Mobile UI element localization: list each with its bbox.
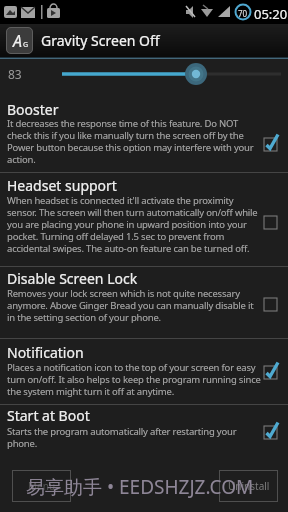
button[interactable] [0, 59, 288, 89]
button[interactable]: Notification [0, 338, 288, 404]
staticText: Headset support [7, 176, 117, 195]
staticText: G [23, 40, 29, 50]
staticText: When headset is connected it'll activate… [7, 194, 258, 255]
staticText: Removes your lock screen which is not qu… [7, 287, 254, 324]
staticText: Booster [7, 100, 59, 119]
button[interactable]: Menu [12, 470, 71, 502]
staticText: Places a notification icon to the top of… [7, 361, 261, 398]
button[interactable]: Start at Boot [0, 404, 288, 455]
staticText: 70 [238, 8, 248, 19]
button[interactable]: Disable Screen Lock [0, 266, 288, 337]
button[interactable]: Booster [0, 92, 288, 171]
staticText: Gravity Screen Off [41, 31, 160, 50]
staticText: Start at Boot [7, 406, 90, 425]
staticText: Starts the program automatically after r… [7, 425, 237, 450]
staticText: Uninstall [228, 479, 270, 493]
staticText: 05:20 [254, 5, 288, 23]
button[interactable]: Headset support [0, 172, 288, 265]
staticText: Menu [28, 479, 56, 493]
staticText: A [13, 30, 22, 52]
button[interactable]: A [0, 24, 288, 57]
staticText: 易享助手 • EEDSHZJZ.COM [26, 474, 254, 500]
staticText: Notification [7, 343, 84, 362]
staticText: It decreases the response time of this f… [7, 117, 254, 166]
staticText: 83 [8, 66, 22, 82]
staticText: Disable Screen Lock [7, 269, 138, 288]
button[interactable]: Uninstall [219, 470, 278, 502]
